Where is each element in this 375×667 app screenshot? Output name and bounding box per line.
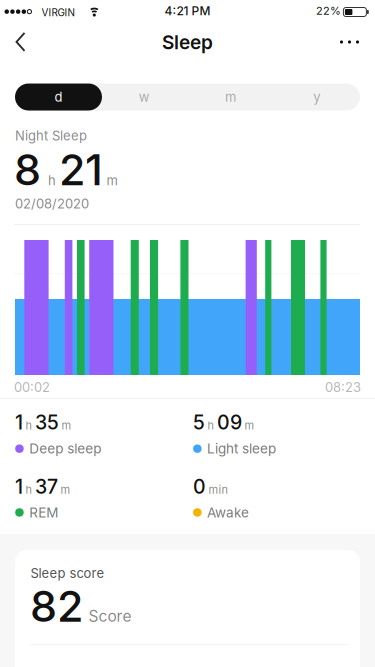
staticText: h xyxy=(25,419,32,432)
staticText: 21 xyxy=(59,144,103,196)
button[interactable] xyxy=(331,27,367,57)
staticText: m xyxy=(244,419,254,432)
staticText: 0 xyxy=(193,475,206,498)
staticText: 4:21 PM xyxy=(164,4,210,18)
staticText: 08:23 xyxy=(325,379,361,395)
button[interactable]: d xyxy=(15,83,102,110)
staticText: Score xyxy=(88,607,131,625)
button[interactable]: Sleep score xyxy=(15,550,360,667)
staticText: 82 xyxy=(30,580,83,632)
staticText: d xyxy=(54,89,62,105)
staticText: Deep sleep xyxy=(29,440,101,457)
staticText: Night Sleep xyxy=(15,128,87,144)
staticText: Sleep score xyxy=(30,565,104,581)
staticText: min xyxy=(208,483,227,496)
staticText: y xyxy=(313,89,320,105)
button[interactable]: w xyxy=(101,83,187,110)
staticText: m xyxy=(106,173,117,188)
staticText: h xyxy=(207,419,214,432)
staticText: 5 xyxy=(193,411,205,434)
staticText: 35 xyxy=(35,411,59,434)
staticText: 00:02 xyxy=(14,379,50,395)
button[interactable]: y xyxy=(274,83,360,110)
button[interactable]: m xyxy=(187,83,273,110)
staticText: Light sleep xyxy=(207,440,276,457)
staticText: 1 xyxy=(15,475,23,498)
staticText: 02/08/2020 xyxy=(15,196,89,212)
staticText: m xyxy=(60,483,70,496)
staticText: m xyxy=(225,89,236,105)
staticText: h xyxy=(48,173,56,188)
staticText: m xyxy=(61,419,71,432)
staticText: 37 xyxy=(35,475,58,498)
staticText: 09 xyxy=(217,411,242,434)
button[interactable] xyxy=(10,26,40,56)
staticText: REM xyxy=(29,504,58,521)
staticText: VIRGIN xyxy=(41,6,75,19)
staticText: 8 xyxy=(14,144,41,196)
staticText: h xyxy=(25,483,32,496)
staticText: 1 xyxy=(15,411,23,434)
staticText: Awake xyxy=(207,504,249,521)
staticText: Sleep xyxy=(162,31,213,54)
staticText: w xyxy=(139,89,150,105)
staticText: 22% xyxy=(316,4,341,17)
